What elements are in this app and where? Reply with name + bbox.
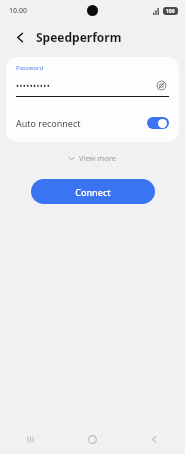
- staticText: 10.00: [9, 6, 27, 16]
- staticText: Speedperform: [36, 29, 122, 45]
- button[interactable]: Connect: [31, 179, 155, 204]
- button[interactable]: Recents: [0, 424, 61, 454]
- staticText: Connect: [75, 186, 111, 198]
- button[interactable]: Back: [10, 27, 30, 47]
- staticText: Auto reconnect: [16, 117, 147, 129]
- staticText: ••••••••••: [16, 80, 153, 91]
- button[interactable]: Auto reconnect: [6, 113, 179, 133]
- button[interactable]: Home: [61, 424, 123, 454]
- staticText: Password: [16, 64, 44, 72]
- staticText: View more: [79, 153, 117, 163]
- staticText: 100: [166, 8, 175, 15]
- button[interactable]: View more: [62, 150, 123, 166]
- button[interactable]: Show password: [153, 77, 169, 93]
- button[interactable]: Auto reconnect toggle: [147, 117, 169, 129]
- button[interactable]: Back: [123, 424, 185, 454]
